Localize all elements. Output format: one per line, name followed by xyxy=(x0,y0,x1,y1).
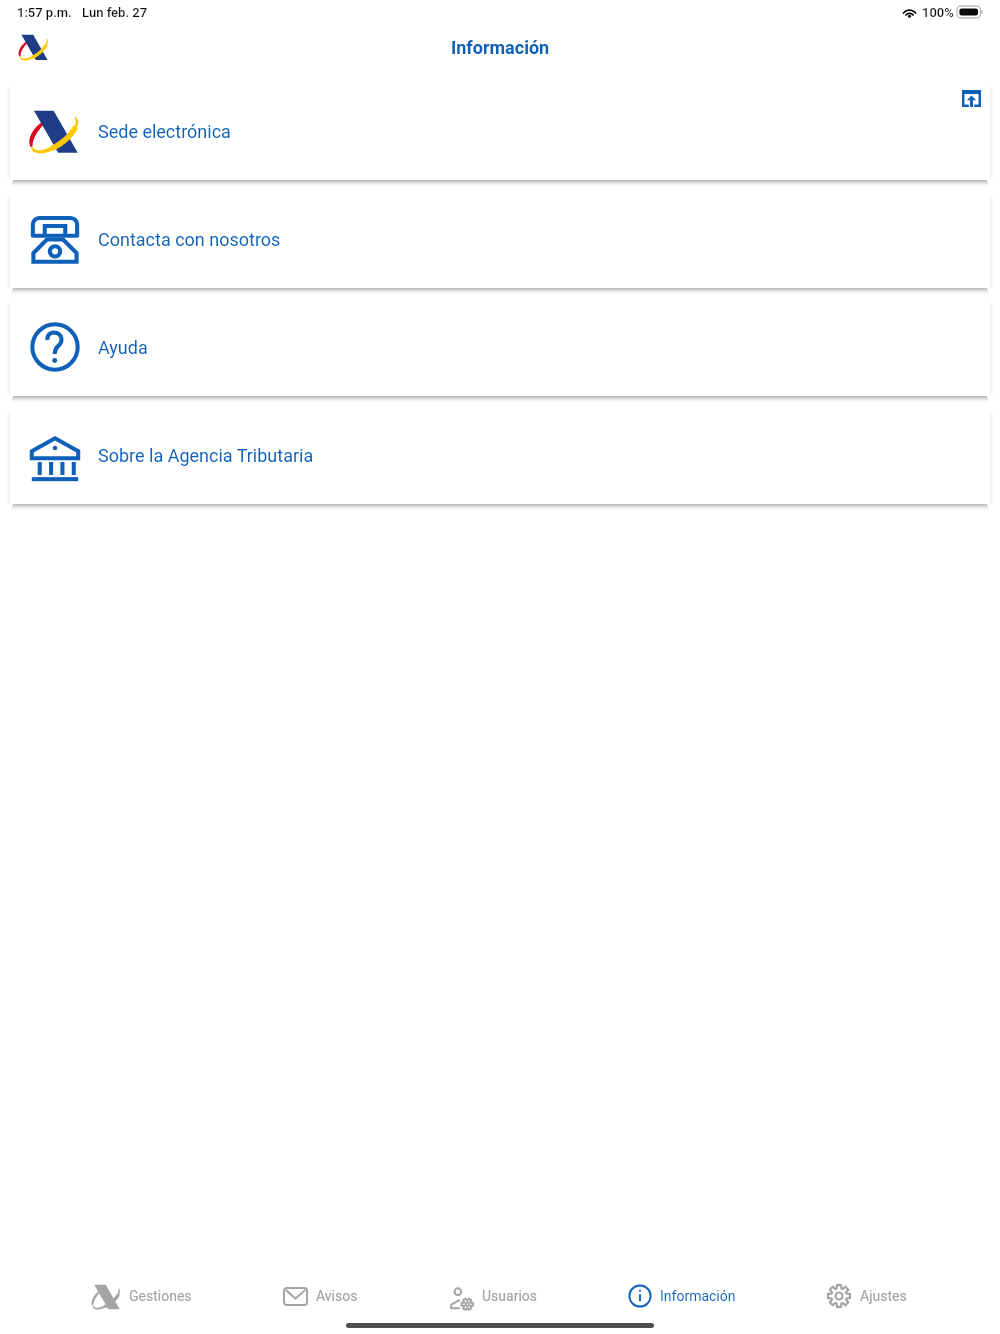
staticText: Información xyxy=(660,1288,736,1304)
button[interactable]: Contacta con nosotros xyxy=(10,190,990,288)
staticText: Usuarios xyxy=(482,1288,537,1304)
staticText: Lun feb. 27 xyxy=(82,5,148,20)
staticText: Ayuda xyxy=(98,337,148,358)
staticText: Sobre la Agencia Tributaria xyxy=(98,445,314,466)
button[interactable]: Agencia Tributaria xyxy=(12,26,56,70)
staticText: 1:57 p.m. xyxy=(17,5,72,20)
button[interactable]: Avisos xyxy=(283,1279,358,1313)
staticText: Información xyxy=(451,37,550,58)
button[interactable]: Usuarios xyxy=(448,1279,537,1313)
other: Abrir en el navegador xyxy=(962,90,981,107)
staticText: Gestiones xyxy=(129,1288,192,1304)
button[interactable]: Sobre la Agencia Tributaria xyxy=(10,406,990,504)
staticText: Contacta con nosotros xyxy=(98,229,281,250)
staticText: Sede electrónica xyxy=(98,121,231,142)
button[interactable]: Sede electrónica xyxy=(10,82,990,180)
staticText: Ajustes xyxy=(860,1288,907,1304)
button[interactable]: Información xyxy=(628,1279,736,1313)
button[interactable]: Ayuda xyxy=(10,298,990,396)
button[interactable]: Ajustes xyxy=(826,1279,907,1313)
staticText: 100% xyxy=(922,5,954,20)
button[interactable]: Abrir en el navegador xyxy=(956,83,986,113)
staticText: Avisos xyxy=(316,1288,358,1304)
button[interactable]: Gestiones xyxy=(92,1279,192,1313)
